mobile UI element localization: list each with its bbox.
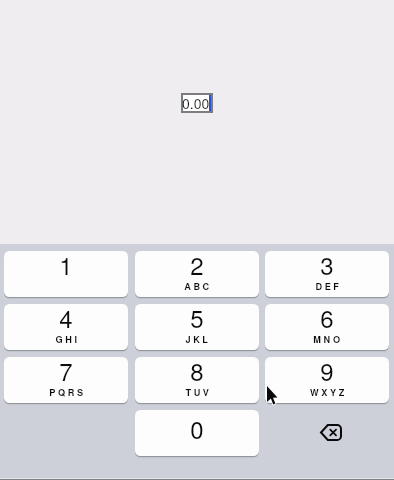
staticText: 6 <box>320 304 334 334</box>
button[interactable]: 6 <box>265 304 389 350</box>
staticText: TUV <box>185 386 212 399</box>
button[interactable]: 4 <box>4 304 128 350</box>
staticText: 3 <box>320 251 334 281</box>
button[interactable]: 2 <box>135 251 259 297</box>
button[interactable]: 7 <box>4 357 128 403</box>
staticText: 7 <box>59 357 73 387</box>
button[interactable]: 5 <box>135 304 259 350</box>
button[interactable]: 1 <box>4 251 128 297</box>
staticText: MNO <box>313 333 343 346</box>
button[interactable]: 3 <box>265 251 389 297</box>
staticText: 4 <box>59 304 73 334</box>
staticText: 1 <box>59 251 73 281</box>
staticText: WXYZ <box>310 386 347 399</box>
staticText: JKL <box>185 333 211 346</box>
staticText: 2 <box>190 251 204 281</box>
staticText: 5 <box>190 304 204 334</box>
staticText: GHI <box>55 333 80 346</box>
staticText: 0 <box>190 411 204 445</box>
staticText: PQRS <box>49 386 86 399</box>
staticText: ABC <box>184 280 212 293</box>
button[interactable]: 9 <box>265 357 389 403</box>
staticText: 0.00 <box>182 93 210 109</box>
staticText: 9 <box>320 357 334 387</box>
button[interactable]: Backspace <box>265 410 389 456</box>
button[interactable]: 8 <box>135 357 259 403</box>
button[interactable]: 0 <box>135 410 259 456</box>
staticText: 8 <box>190 357 204 387</box>
staticText: DEF <box>315 280 342 293</box>
